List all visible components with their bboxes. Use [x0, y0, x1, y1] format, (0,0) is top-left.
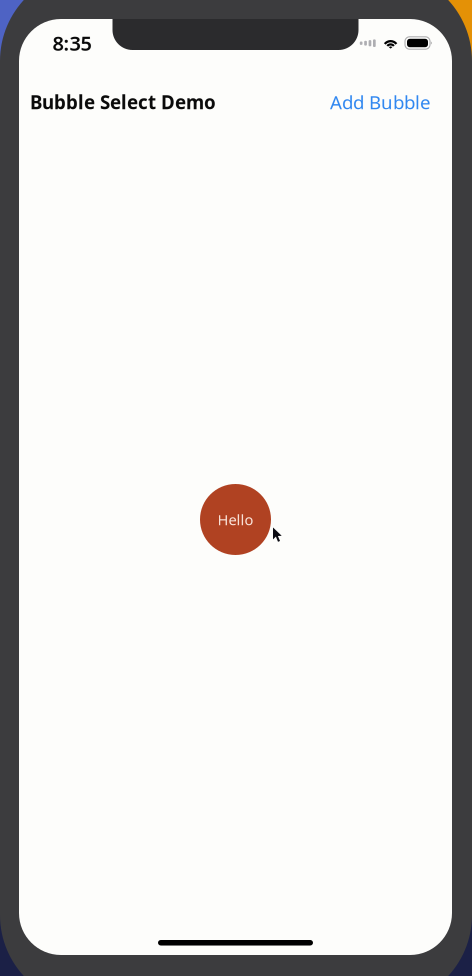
staticText: 8:35: [52, 30, 91, 56]
staticText: Add Bubble: [330, 90, 431, 114]
button[interactable]: Hello: [200, 484, 271, 555]
staticText: Hello: [217, 510, 253, 529]
button[interactable]: Add Bubble: [330, 93, 431, 111]
staticText: Bubble Select Demo: [30, 90, 216, 114]
